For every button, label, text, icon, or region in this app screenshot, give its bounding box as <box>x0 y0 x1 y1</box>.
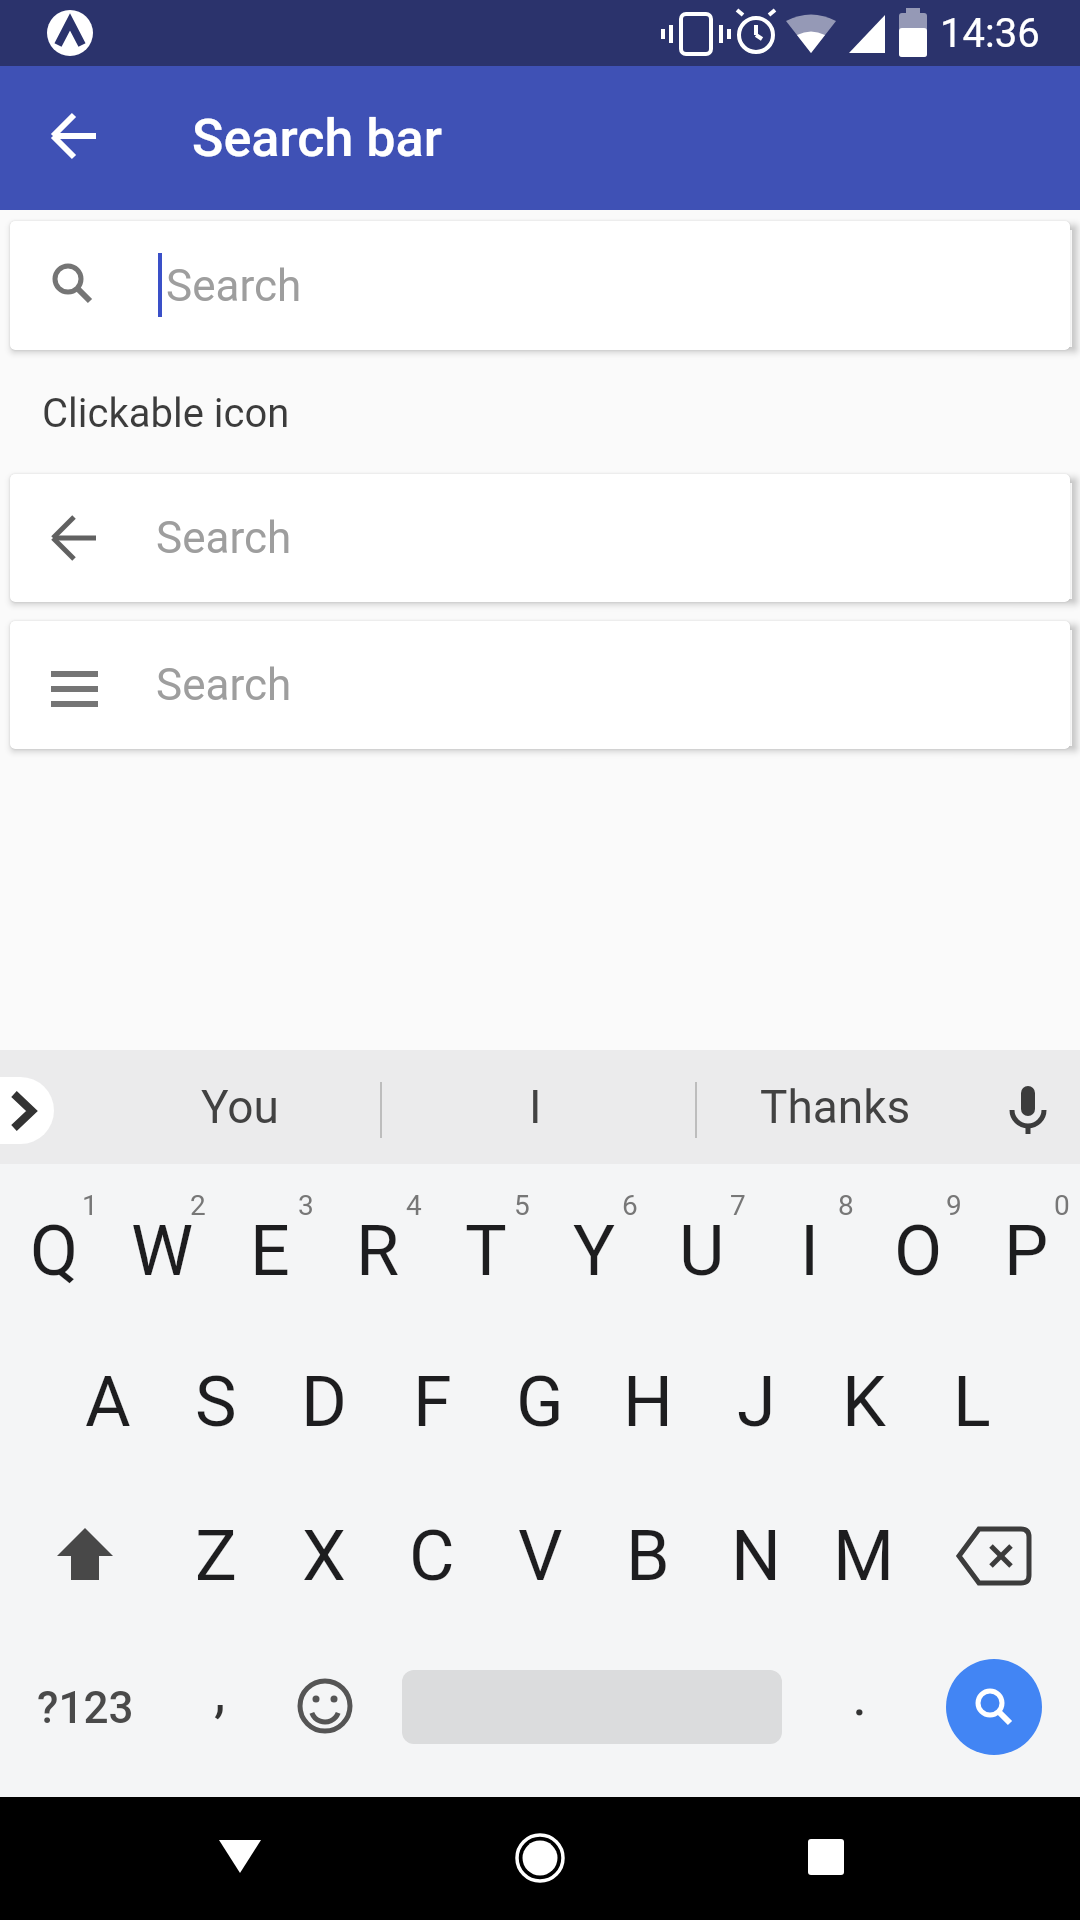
staticText: 4 <box>406 1189 422 1222</box>
button[interactable]: F <box>378 1347 486 1457</box>
button[interactable]: O <box>864 1196 972 1306</box>
staticText: O <box>894 1210 943 1292</box>
staticText: Y <box>573 1210 616 1292</box>
staticText: V <box>518 1515 563 1597</box>
button[interactable]: L <box>918 1347 1026 1457</box>
button[interactable]: X <box>270 1501 378 1611</box>
staticText: 9 <box>946 1189 962 1222</box>
button[interactable] <box>955 1527 1035 1587</box>
button[interactable] <box>40 504 108 572</box>
staticText: 3 <box>298 1189 314 1222</box>
staticText: , <box>214 1657 226 1725</box>
button[interactable]: W <box>108 1196 216 1306</box>
button[interactable]: P <box>972 1196 1080 1306</box>
staticText: J <box>737 1361 776 1443</box>
button[interactable] <box>512 1830 568 1886</box>
staticText: R <box>356 1210 400 1292</box>
staticText: Search <box>166 260 302 312</box>
button[interactable] <box>1004 1084 1052 1138</box>
button[interactable]: Q <box>0 1196 108 1306</box>
staticText: Z <box>195 1515 237 1597</box>
staticText: D <box>301 1361 347 1443</box>
staticText: Search <box>156 659 292 711</box>
staticText: 6 <box>622 1189 638 1222</box>
staticText: G <box>516 1361 564 1443</box>
button[interactable] <box>53 1524 117 1588</box>
button[interactable]: B <box>594 1501 702 1611</box>
button[interactable]: D <box>270 1347 378 1457</box>
button[interactable] <box>10 474 1070 602</box>
staticText: 14:36 <box>940 10 1040 57</box>
staticText: K <box>842 1361 886 1443</box>
staticText: F <box>413 1361 452 1443</box>
staticText: H <box>623 1361 673 1443</box>
staticText: W <box>131 1210 194 1292</box>
button[interactable]: T <box>432 1196 540 1306</box>
staticText: U <box>679 1210 725 1292</box>
staticText: C <box>409 1515 455 1597</box>
staticText: P <box>1004 1210 1049 1292</box>
button[interactable] <box>10 221 1070 350</box>
staticText: Q <box>30 1210 79 1292</box>
staticText: S <box>195 1361 237 1443</box>
button[interactable]: G <box>486 1347 594 1457</box>
staticText: T <box>465 1210 507 1292</box>
staticText: N <box>731 1515 781 1597</box>
button[interactable] <box>216 1832 264 1880</box>
button[interactable]: R <box>324 1196 432 1306</box>
button[interactable]: M <box>810 1501 918 1611</box>
button[interactable] <box>10 621 1070 749</box>
button[interactable]: E <box>216 1196 324 1306</box>
staticText: Thanks <box>760 1080 911 1134</box>
button[interactable] <box>808 1839 844 1875</box>
staticText: 7 <box>730 1189 746 1222</box>
staticText: Search bar <box>192 108 443 169</box>
button[interactable]: N <box>702 1501 810 1611</box>
staticText: 2 <box>190 1189 206 1222</box>
staticText: 5 <box>514 1189 530 1222</box>
staticText: L <box>953 1361 991 1443</box>
staticText: M <box>833 1515 895 1597</box>
button[interactable]: Y <box>540 1196 648 1306</box>
staticText: A <box>85 1361 131 1443</box>
button[interactable] <box>0 1077 54 1144</box>
staticText: ?123 <box>37 1682 134 1734</box>
staticText: X <box>302 1515 346 1597</box>
button[interactable] <box>297 1678 353 1734</box>
button[interactable]: K <box>810 1347 918 1457</box>
button[interactable]: I <box>756 1196 864 1306</box>
staticText: I <box>529 1080 542 1134</box>
staticText: I <box>800 1210 820 1292</box>
button[interactable]: S <box>162 1347 270 1457</box>
button[interactable]: A <box>54 1347 162 1457</box>
button[interactable]: C <box>378 1501 486 1611</box>
button[interactable]: V <box>486 1501 594 1611</box>
button[interactable]: H <box>594 1347 702 1457</box>
button[interactable] <box>51 671 99 709</box>
button[interactable]: U <box>648 1196 756 1306</box>
button[interactable] <box>946 1659 1042 1755</box>
staticText: 8 <box>838 1189 854 1222</box>
staticText: Search <box>156 512 292 564</box>
staticText: . <box>852 1661 868 1729</box>
staticText: 1 <box>82 1189 98 1222</box>
staticText: B <box>626 1515 670 1597</box>
staticText: You <box>201 1080 279 1134</box>
staticText: Clickable icon <box>42 390 290 436</box>
button[interactable] <box>40 102 108 170</box>
staticText: 0 <box>1054 1189 1070 1222</box>
staticText: E <box>250 1210 290 1292</box>
button[interactable]: Z <box>162 1501 270 1611</box>
button[interactable]: J <box>702 1347 810 1457</box>
